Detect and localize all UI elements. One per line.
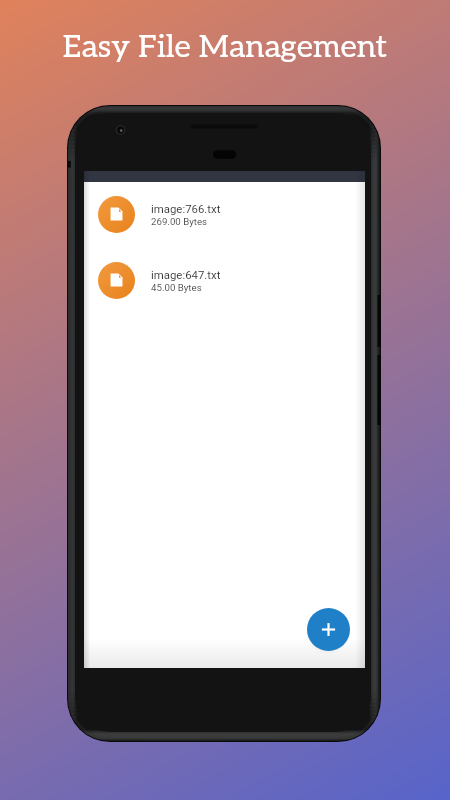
- staticText: Easy File Management: [0, 28, 450, 66]
- staticText: 269.00 Bytes: [151, 216, 208, 227]
- button[interactable]: image:766.txt: [84, 181, 365, 247]
- staticText: image:647.txt: [151, 268, 221, 281]
- staticText: 45.00 Bytes: [151, 282, 202, 293]
- staticText: image:766.txt: [151, 202, 221, 215]
- button[interactable]: image:647.txt: [84, 247, 365, 313]
- button[interactable]: Add new file: [307, 608, 350, 651]
